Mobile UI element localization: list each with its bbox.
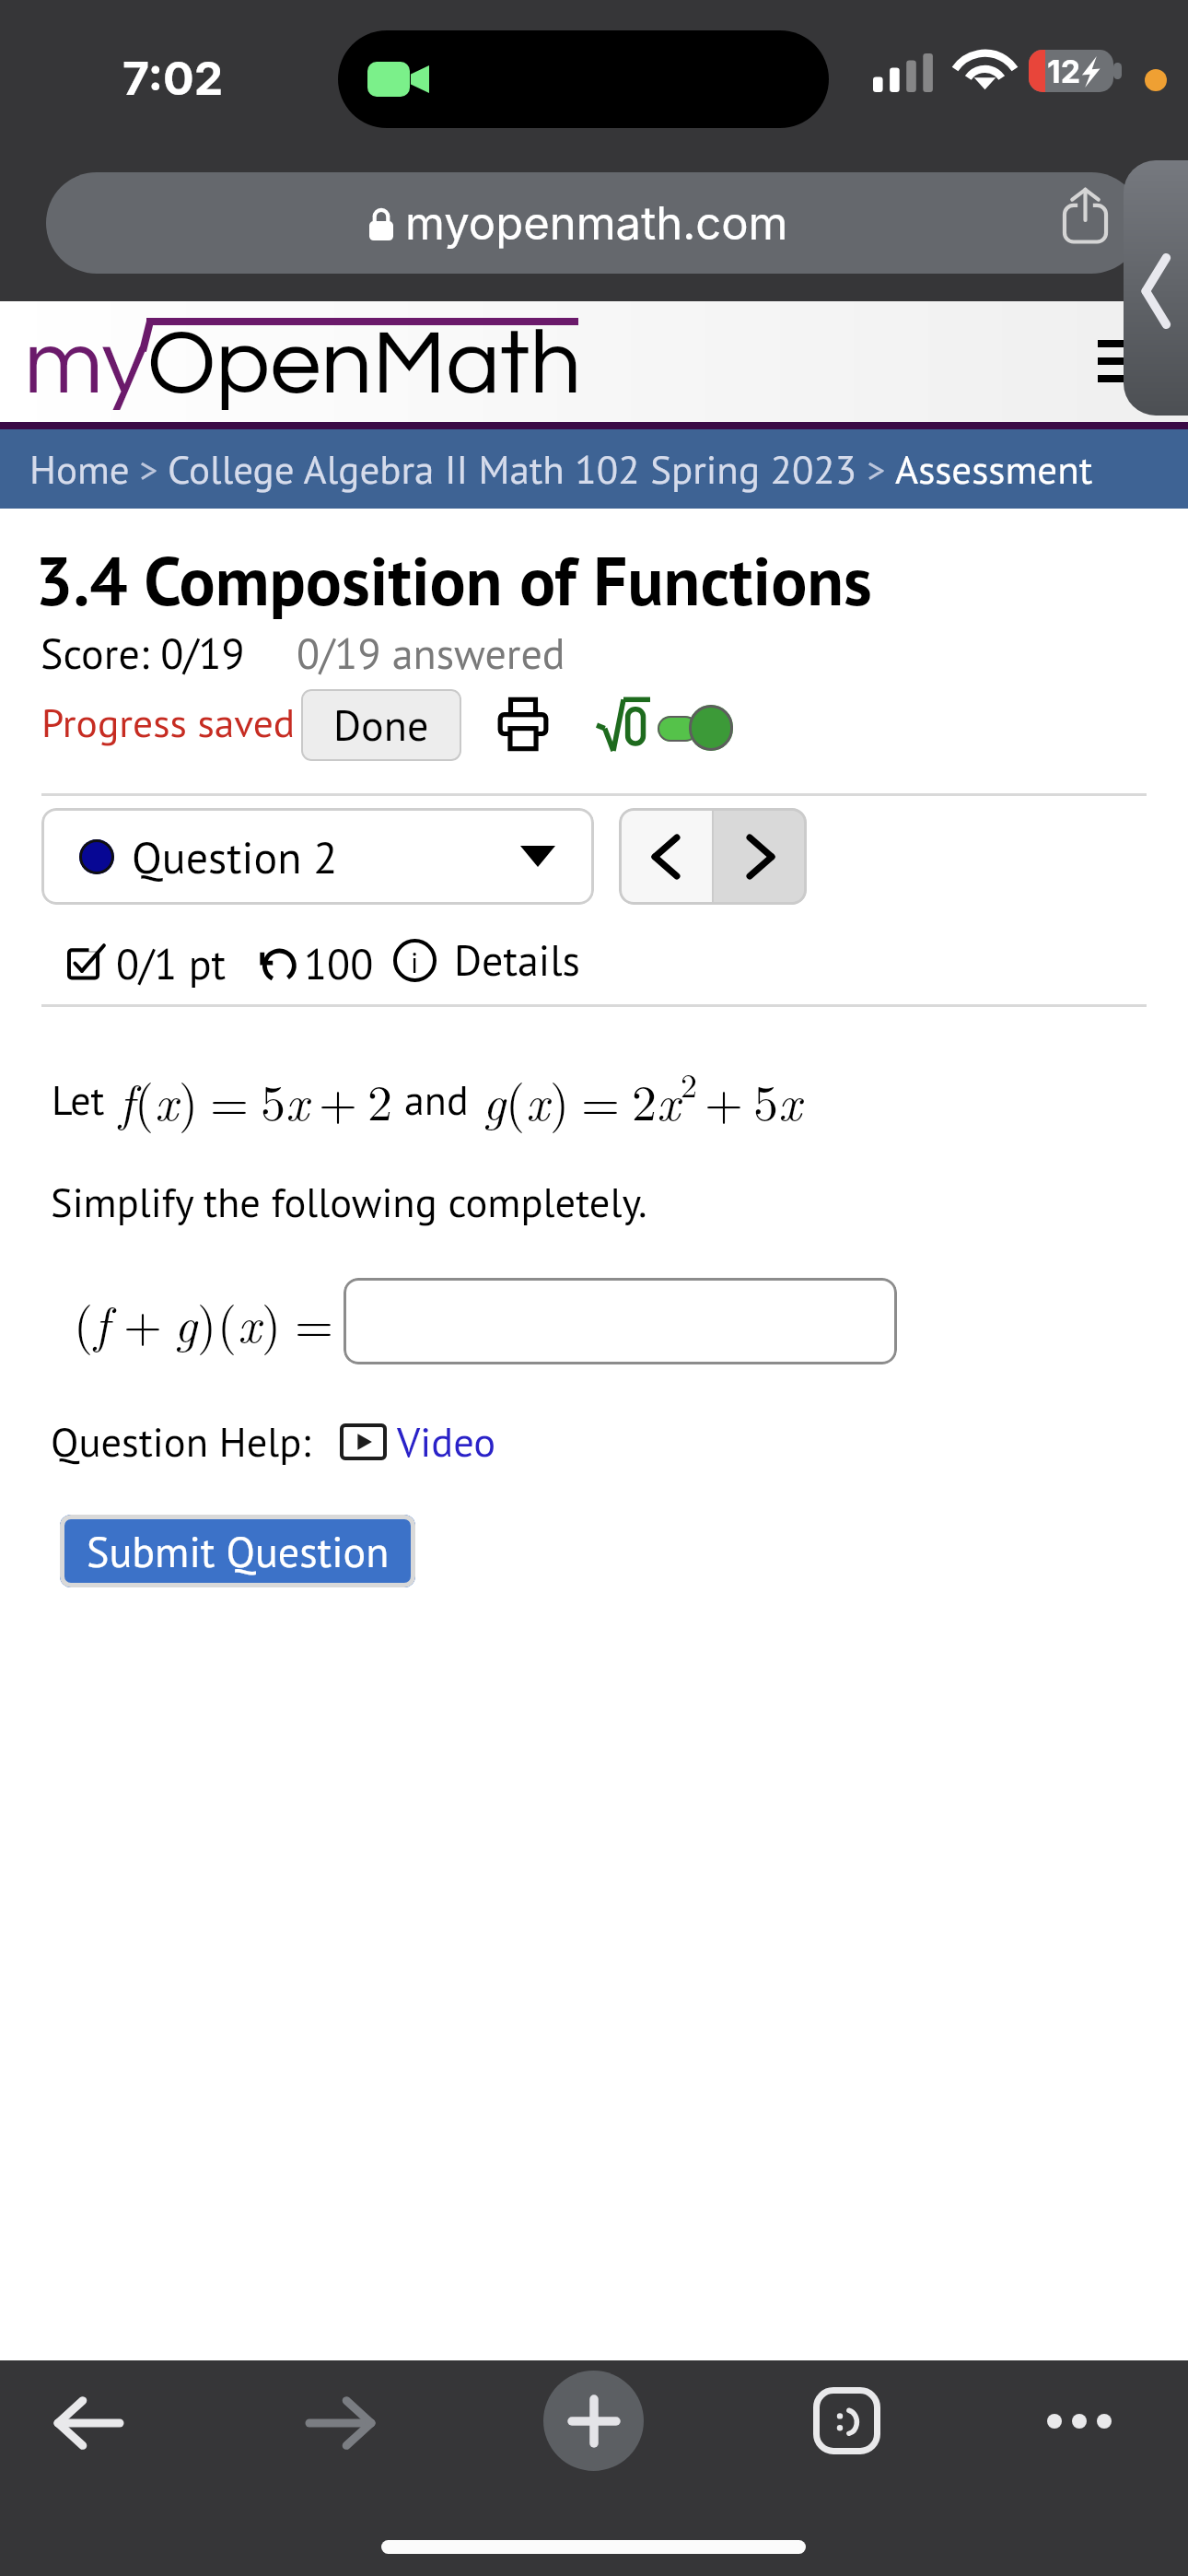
button[interactable]: Previous question: [619, 808, 712, 905]
staticText: 5: [753, 1064, 778, 1135]
staticText: x: [155, 1064, 179, 1134]
staticText: =: [295, 1286, 334, 1357]
staticText: Score: 0/19: [41, 626, 245, 681]
staticText: Let: [52, 1073, 105, 1126]
staticText: (: [134, 1064, 155, 1135]
staticText: =: [210, 1064, 250, 1135]
staticText: 5: [261, 1064, 285, 1135]
button[interactable]: i: [393, 932, 580, 988]
staticText: x: [238, 1286, 262, 1356]
button[interactable]: Question 2: [41, 808, 594, 905]
staticText: 2: [632, 1064, 657, 1135]
button[interactable]: Forward: [296, 2381, 384, 2465]
staticText: Simplify the following completely.: [51, 1176, 647, 1229]
staticText: Assessment: [895, 443, 1093, 495]
staticText: +: [123, 1286, 163, 1357]
button[interactable]: New tab: [543, 2371, 644, 2471]
staticText: 7:02: [122, 51, 224, 106]
button[interactable]: Back: [44, 2381, 133, 2465]
staticText: ): [550, 1064, 570, 1135]
staticText: (: [506, 1064, 526, 1135]
staticText: ): [197, 1286, 217, 1357]
button[interactable]: myopenmath.com: [46, 172, 1142, 274]
staticText: i: [411, 943, 419, 980]
staticText: 2: [367, 1064, 392, 1135]
staticText: g: [483, 1064, 506, 1134]
staticText: Details: [454, 932, 580, 988]
staticText: Video: [397, 1415, 496, 1469]
staticText: +: [705, 1064, 744, 1135]
staticText: x: [778, 1064, 802, 1134]
staticText: +: [319, 1064, 358, 1135]
button[interactable]: Tabs: [813, 2387, 880, 2454]
staticText: >: [130, 446, 168, 492]
staticText: Progress saved: [41, 697, 296, 748]
staticText: ): [179, 1064, 199, 1135]
button[interactable]: Menu: [1098, 340, 1146, 382]
staticText: 0/1 pt: [116, 936, 227, 991]
staticText: Question 2: [132, 828, 338, 885]
button[interactable]: Submit Question: [60, 1515, 415, 1587]
staticText: >: [857, 446, 895, 492]
button[interactable]: More: [1033, 2390, 1125, 2453]
staticText: ): [262, 1286, 282, 1357]
button[interactable]: Share: [1052, 182, 1118, 249]
button[interactable]: Video: [342, 1412, 496, 1471]
button[interactable]: Back: [1124, 160, 1188, 416]
staticText: Done: [333, 697, 429, 753]
button[interactable]: Home: [29, 443, 130, 495]
staticText: x: [526, 1064, 550, 1134]
staticText: x: [657, 1064, 681, 1134]
button[interactable]: Next question: [714, 808, 807, 905]
button[interactable]: Print: [498, 697, 548, 751]
staticText: OpenMath: [147, 318, 582, 412]
staticText: Question Help:: [51, 1415, 311, 1469]
staticText: (: [74, 1286, 94, 1357]
staticText: g: [174, 1286, 197, 1356]
staticText: 3.4 Composition of Functions: [35, 537, 872, 624]
staticText: myopenmath.com: [405, 196, 788, 251]
button[interactable]: Done: [301, 689, 461, 761]
staticText: Submit Question: [87, 1524, 390, 1579]
staticText: 2: [681, 1060, 697, 1107]
button[interactable]: Math input toggle: [597, 697, 733, 753]
button[interactable]: [344, 1278, 897, 1364]
staticText: and: [404, 1073, 469, 1126]
staticText: f: [94, 1286, 110, 1356]
staticText: =: [581, 1064, 621, 1135]
staticText: my: [24, 318, 147, 412]
staticText: x: [285, 1064, 309, 1134]
staticText: 12: [1047, 53, 1081, 90]
staticText: 100: [304, 936, 374, 991]
staticText: 0/19 answered: [297, 626, 565, 681]
staticText: (: [217, 1286, 238, 1357]
button[interactable]: College Algebra II Math 102 Spring 2023: [168, 443, 857, 495]
staticText: f: [119, 1064, 134, 1134]
